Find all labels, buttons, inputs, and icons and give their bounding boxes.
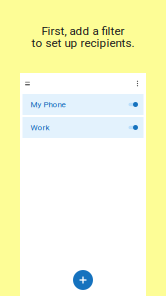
button[interactable]: Work: [20, 117, 146, 138]
button[interactable]: Add filter: [73, 270, 93, 290]
button[interactable]: Menu: [21, 73, 34, 94]
staticText: to set up recipients.: [31, 36, 134, 50]
staticText: My Phone: [30, 100, 65, 109]
staticText: Work: [30, 123, 49, 132]
staticText: First, add a filter: [41, 24, 124, 38]
button[interactable]: More options: [131, 73, 144, 94]
button[interactable]: My Phone: [20, 94, 146, 115]
